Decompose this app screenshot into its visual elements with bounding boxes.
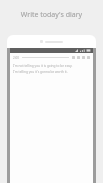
staticText: I'm telling you it's gonna be worth it. [13,70,68,74]
staticText: Write today's diary [0,10,103,20]
staticText: 2:00 [13,56,19,60]
button[interactable]: 2:00 [7,35,96,183]
other: Editor toolbar actions [72,56,90,59]
button[interactable]: 2:00 [10,53,93,62]
staticText: I'm not telling you it is going to be ea… [13,64,73,68]
